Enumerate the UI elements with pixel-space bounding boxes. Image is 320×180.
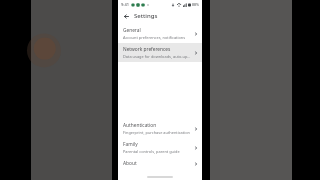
staticText: Account preferences, notifications bbox=[123, 35, 186, 40]
staticText: Family bbox=[123, 141, 138, 148]
staticText: General bbox=[123, 27, 141, 34]
staticText: 88% bbox=[192, 2, 199, 7]
staticText: Parental controls, parent guide bbox=[123, 149, 180, 154]
staticText: Network preferences bbox=[123, 46, 171, 53]
staticText: Data usage for downloads, auto-updates bbox=[123, 54, 191, 59]
button[interactable]: About bbox=[118, 157, 202, 170]
button[interactable]: Authentication bbox=[118, 119, 202, 138]
staticText: Fingerprint, purchase authentication bbox=[123, 130, 190, 135]
button[interactable]: General bbox=[118, 24, 202, 43]
button[interactable]: Network preferences bbox=[118, 43, 202, 62]
staticText: About bbox=[123, 160, 137, 167]
button[interactable]: Back bbox=[121, 11, 131, 21]
button[interactable]: Family bbox=[118, 138, 202, 157]
staticText: 9:41 bbox=[121, 2, 129, 7]
staticText: Settings bbox=[134, 12, 158, 20]
staticText: Authentication bbox=[123, 122, 157, 129]
